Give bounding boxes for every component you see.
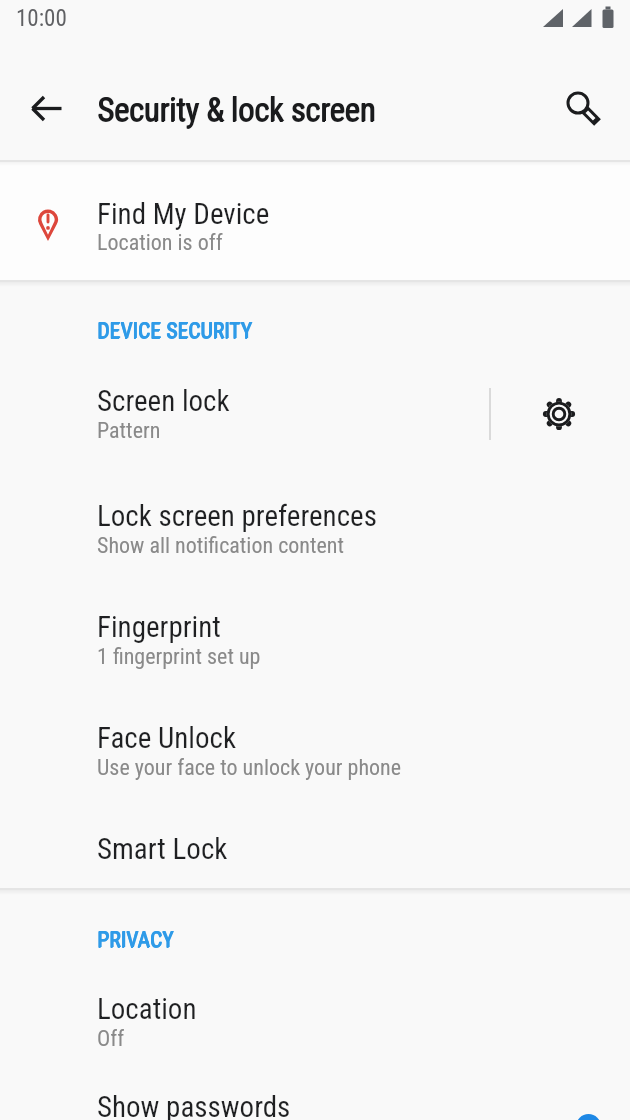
staticText: 1 fingerprint set up: [97, 644, 261, 670]
staticText: PRIVACY: [98, 927, 175, 952]
staticText: Screen lock: [97, 384, 230, 418]
staticText: Lock screen preferences: [97, 499, 377, 533]
button[interactable]: [0, 1065, 630, 1120]
staticText: Security & lock screen: [97, 91, 376, 130]
button[interactable]: [0, 345, 630, 456]
button[interactable]: [576, 1114, 601, 1120]
button[interactable]: [0, 460, 630, 571]
staticText: Location is off: [97, 230, 223, 256]
staticText: Show all notification content: [97, 533, 345, 559]
staticText: Use your face to unlock your phone: [97, 755, 402, 781]
staticText: Off: [97, 1026, 125, 1052]
staticText: Security & lock screen: [97, 90, 376, 129]
button[interactable]: [0, 571, 630, 682]
staticText: Security & lock screen: [98, 90, 377, 129]
staticText: Fingerprint: [97, 610, 221, 644]
button[interactable]: [0, 793, 630, 904]
button[interactable]: Find My Device: [0, 162, 630, 280]
staticText: Show passwords: [97, 1090, 291, 1120]
staticText: PRIVACY: [97, 927, 174, 952]
staticText: DEVICE SECURITY: [97, 319, 252, 344]
button[interactable]: [531, 386, 587, 442]
button[interactable]: [0, 954, 630, 1065]
staticText: Location: [97, 992, 197, 1026]
staticText: PRIVACY: [97, 928, 174, 953]
button[interactable]: [551, 76, 607, 132]
staticText: Find My Device: [97, 197, 270, 231]
staticText: Smart Lock: [97, 832, 228, 866]
button[interactable]: [18, 81, 74, 137]
button[interactable]: [0, 682, 630, 793]
staticText: Pattern: [97, 418, 161, 444]
staticText: DEVICE SECURITY: [98, 318, 253, 343]
staticText: Face Unlock: [97, 721, 237, 755]
staticText: DEVICE SECURITY: [97, 318, 252, 343]
staticText: 10:00: [16, 5, 67, 32]
